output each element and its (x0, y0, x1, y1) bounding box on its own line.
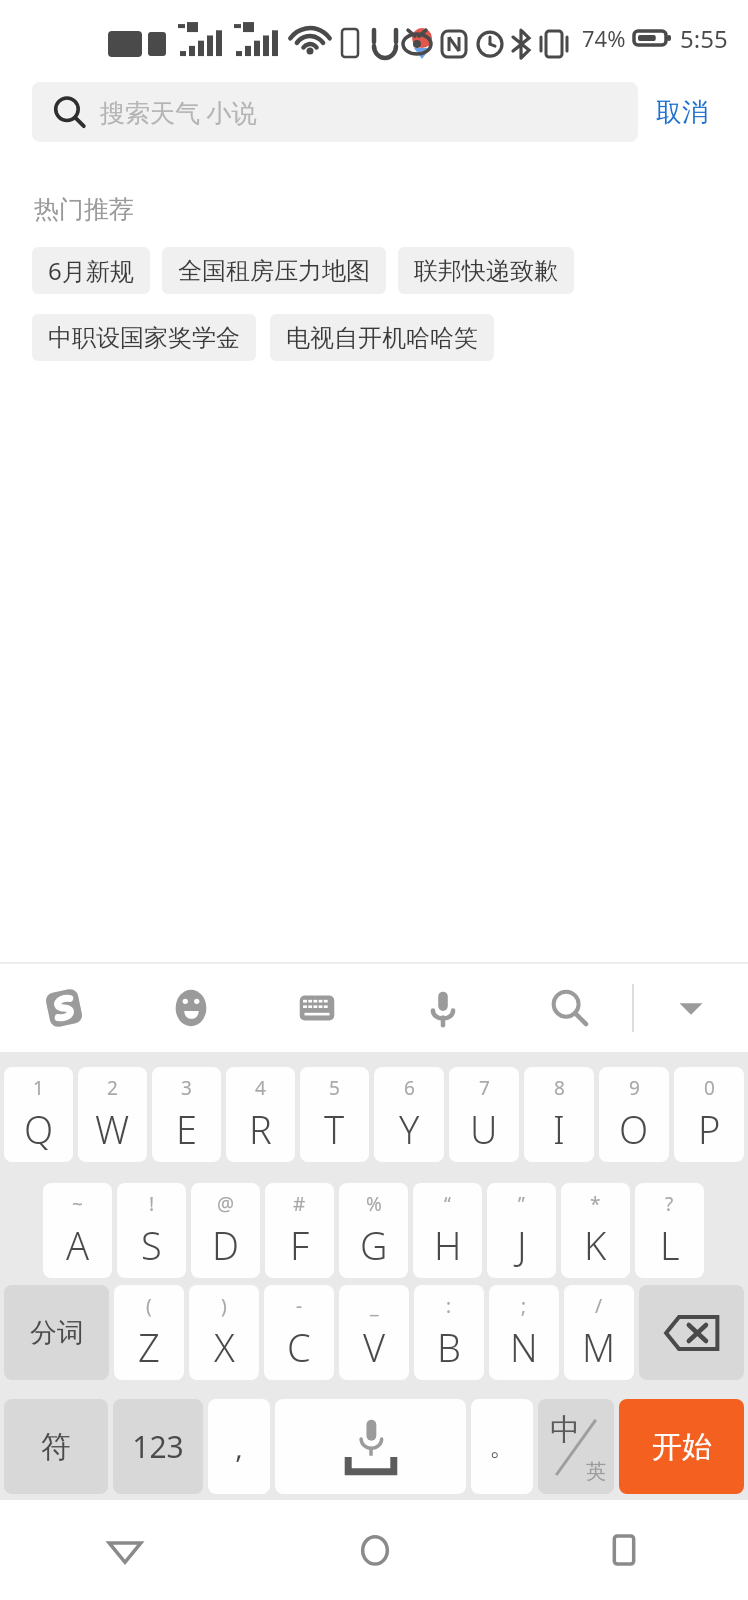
staticText: S (141, 1219, 162, 1271)
button[interactable]: 4 (226, 1067, 295, 1162)
button[interactable]: ) (189, 1285, 259, 1380)
button[interactable]: ~ (43, 1183, 112, 1278)
button[interactable]: ; (489, 1285, 559, 1380)
staticText: % (366, 1191, 382, 1217)
button[interactable]: 中职设国家奖学金 (32, 314, 256, 361)
button[interactable]: 电视自开机哈哈笑 (270, 314, 494, 361)
staticText: 取消 (656, 96, 708, 129)
staticText: 中 (550, 1411, 580, 1449)
staticText: 1 (33, 1075, 44, 1101)
button[interactable]: Home (250, 1500, 499, 1600)
button[interactable]: 开始 (619, 1399, 744, 1494)
button[interactable]: Backspace (639, 1285, 744, 1380)
staticText: # (293, 1191, 306, 1217)
button[interactable]: * (561, 1183, 630, 1278)
staticText: @ (217, 1191, 235, 1217)
button[interactable]: 6月新规 (32, 247, 150, 294)
button[interactable]: Voice input (380, 964, 506, 1052)
staticText: H (434, 1219, 462, 1271)
button[interactable]: 123 (113, 1399, 203, 1494)
staticText: 2 (107, 1075, 118, 1101)
staticText: ? (665, 1191, 674, 1217)
staticText: 分词 (30, 1316, 84, 1350)
staticText: K (584, 1219, 607, 1271)
button[interactable]: Space, voice input (275, 1399, 466, 1494)
button[interactable]: 分词 (4, 1285, 109, 1380)
button[interactable]: 符 (4, 1399, 108, 1494)
button[interactable]: # (265, 1183, 334, 1278)
button[interactable]: ” (487, 1183, 556, 1278)
button[interactable]: 联邦快递致歉 (398, 247, 574, 294)
staticText: J (517, 1219, 527, 1271)
staticText: _ (370, 1293, 379, 1319)
staticText: 。 (489, 1430, 515, 1463)
button[interactable]: Keyboard settings (254, 964, 380, 1052)
staticText: : (446, 1293, 452, 1319)
button[interactable]: / (564, 1285, 634, 1380)
button[interactable]: 9 (599, 1067, 669, 1162)
button[interactable]: 0 (674, 1067, 744, 1162)
staticText: 7 (479, 1075, 490, 1101)
button[interactable]: “ (413, 1183, 482, 1278)
button[interactable]: - (264, 1285, 334, 1380)
staticText: 0 (704, 1075, 715, 1101)
staticText: F (290, 1219, 310, 1271)
button[interactable]: % (339, 1183, 408, 1278)
staticText: 符 (41, 1428, 71, 1466)
staticText: 搜索天气 小说 (100, 95, 257, 129)
button[interactable]: Back (0, 1500, 250, 1600)
button[interactable]: : (414, 1285, 484, 1380)
button[interactable]: 2 (78, 1067, 147, 1162)
button[interactable]: 。 (471, 1399, 533, 1494)
staticText: 5:55 (680, 22, 728, 55)
button[interactable]: 8 (524, 1067, 594, 1162)
staticText: U (470, 1103, 498, 1155)
button[interactable]: Hide keyboard (634, 964, 748, 1052)
staticText: D (212, 1219, 240, 1271)
staticText: 热门推荐 (34, 194, 134, 225)
staticText: ” (518, 1191, 525, 1217)
staticText: ) (221, 1293, 227, 1319)
staticText: R (249, 1103, 272, 1155)
button[interactable]: 5 (300, 1067, 369, 1162)
button[interactable]: Search (506, 964, 632, 1052)
button[interactable]: _ (339, 1285, 409, 1380)
button[interactable]: Recent apps (499, 1500, 748, 1600)
staticText: C (287, 1321, 311, 1373)
staticText: E (176, 1103, 198, 1155)
button[interactable]: Sogou input method (0, 964, 127, 1052)
button[interactable]: ( (114, 1285, 184, 1380)
staticText: L (660, 1219, 680, 1271)
staticText: 74% (582, 23, 626, 53)
button[interactable]: 7 (449, 1067, 519, 1162)
staticText: N (510, 1321, 538, 1373)
staticText: 英 (586, 1459, 606, 1484)
button[interactable]: , (208, 1399, 270, 1494)
staticText: Y (399, 1103, 420, 1155)
button[interactable]: 搜索天气 小说 (32, 82, 638, 142)
button[interactable]: @ (191, 1183, 260, 1278)
button[interactable]: 1 (4, 1067, 73, 1162)
staticText: ! (149, 1191, 155, 1217)
staticText: V (363, 1321, 386, 1373)
staticText: 全国租房压力地图 (178, 256, 370, 286)
staticText: Q (24, 1103, 54, 1155)
staticText: B (437, 1321, 461, 1373)
button[interactable]: Switch Chinese English (538, 1399, 614, 1494)
staticText: X (214, 1321, 235, 1373)
button[interactable]: 全国租房压力地图 (162, 247, 386, 294)
staticText: O (619, 1103, 649, 1155)
staticText: 开始 (652, 1428, 712, 1466)
button[interactable]: 6 (374, 1067, 444, 1162)
button[interactable]: 取消 (638, 86, 726, 139)
button[interactable]: 3 (152, 1067, 221, 1162)
button[interactable]: Emoji (127, 964, 254, 1052)
staticText: Z (138, 1321, 160, 1373)
staticText: M (582, 1321, 616, 1373)
staticText: A (66, 1219, 90, 1271)
staticText: / (595, 1293, 603, 1319)
button[interactable]: ! (117, 1183, 186, 1278)
button[interactable]: ? (635, 1183, 704, 1278)
staticText: P (698, 1103, 721, 1155)
staticText: 电视自开机哈哈笑 (286, 323, 478, 353)
